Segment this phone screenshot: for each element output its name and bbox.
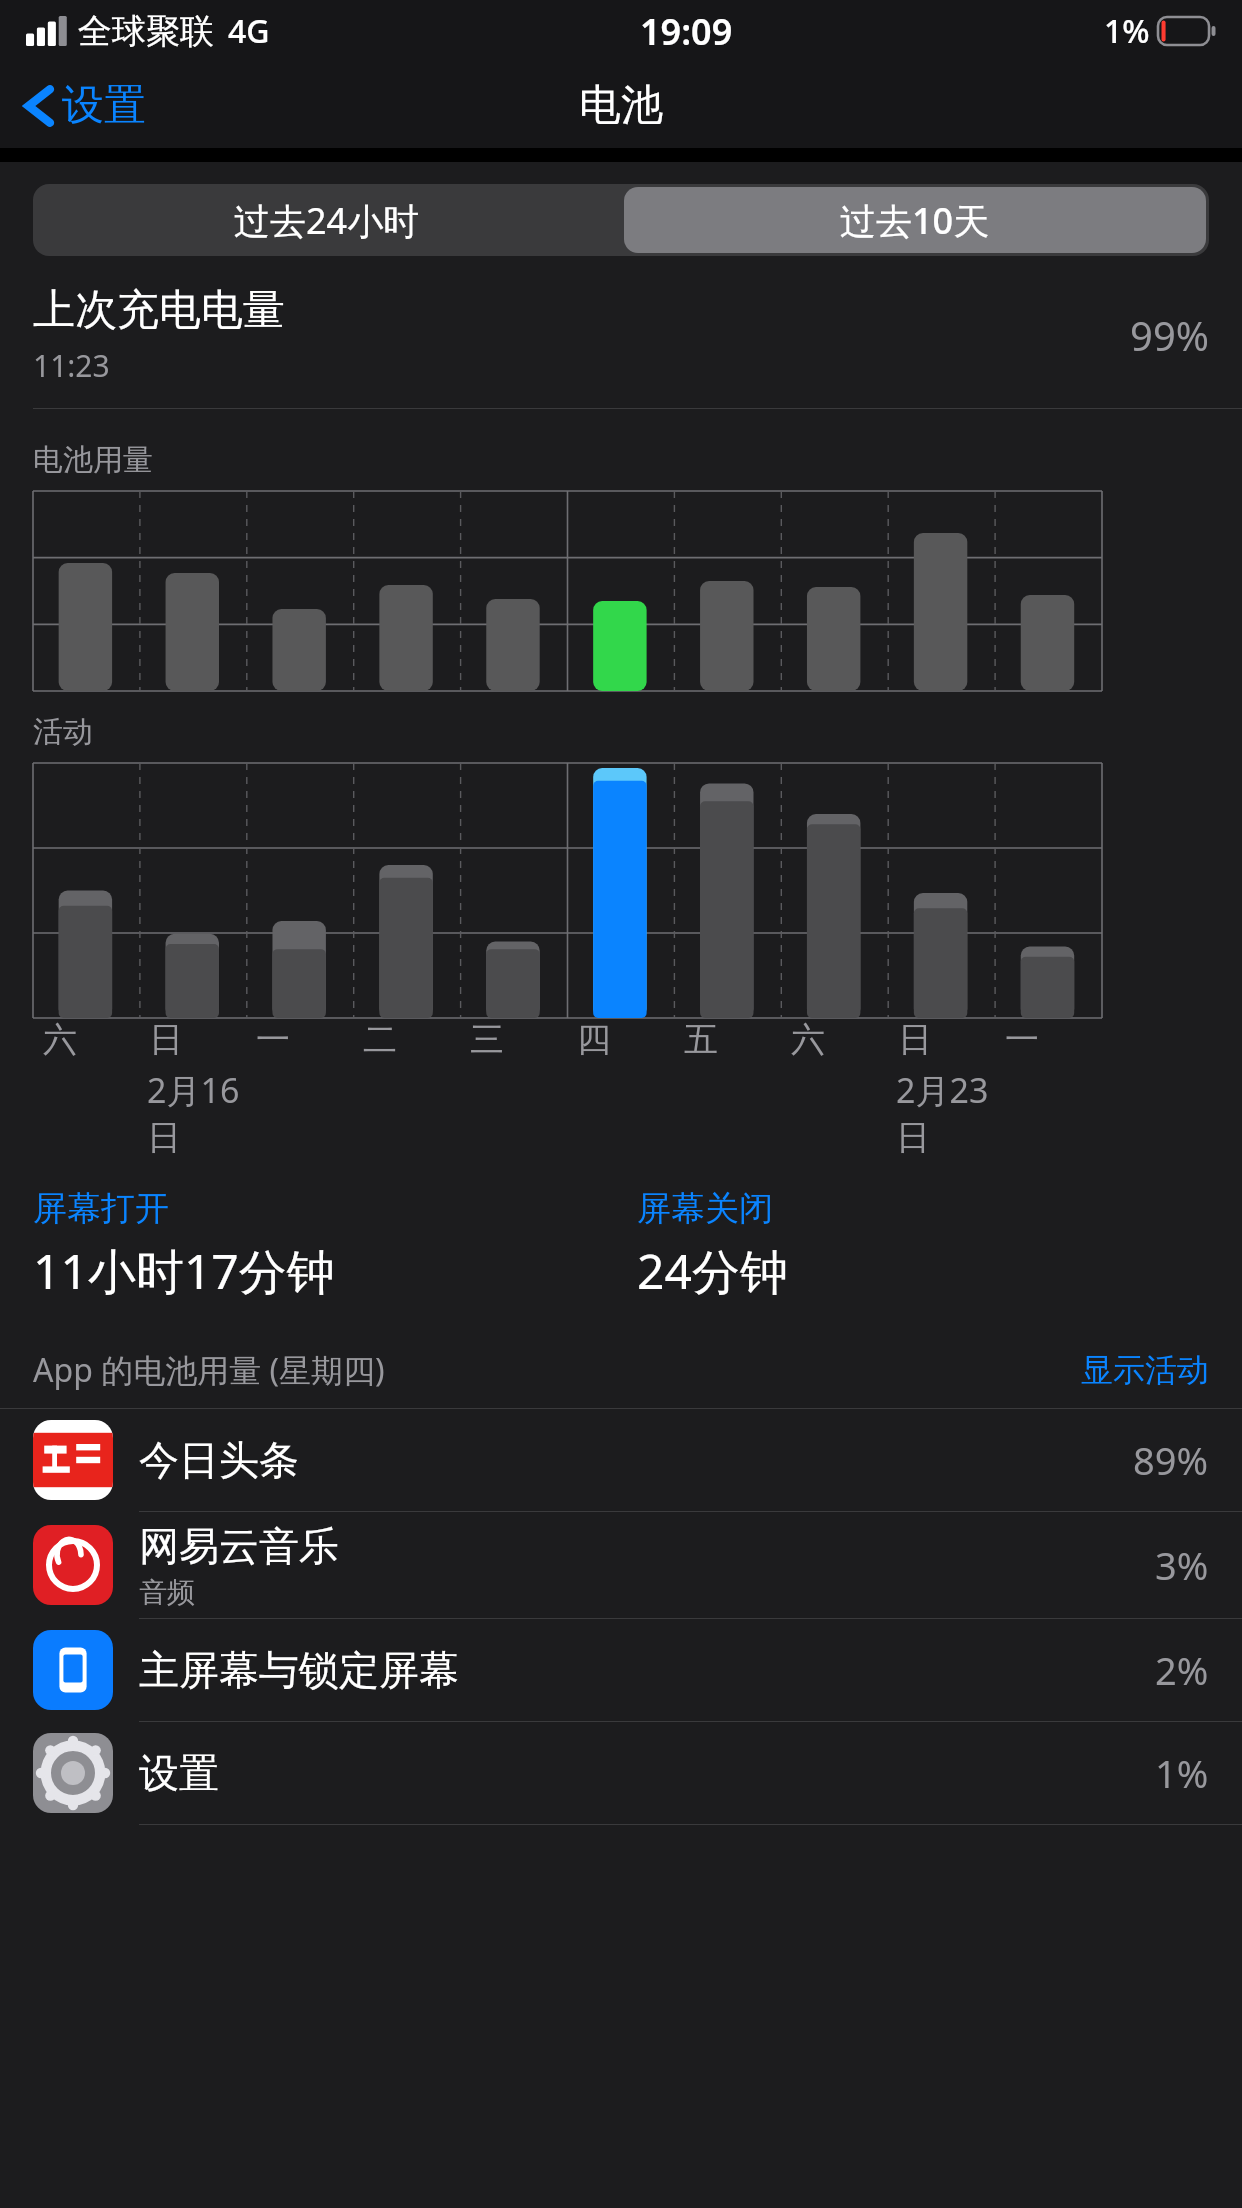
staticText: 屏幕关闭	[637, 1187, 773, 1230]
staticText: 3%	[1155, 1539, 1209, 1591]
staticText: 2%	[1155, 1644, 1209, 1696]
staticText: 1%	[1155, 1747, 1209, 1799]
staticText: 六	[791, 1018, 825, 1061]
staticText: 设置	[139, 1748, 219, 1798]
staticText: 11:23	[33, 345, 110, 386]
staticText: 11小时17分钟	[33, 1238, 335, 1304]
staticText: 日	[898, 1018, 932, 1061]
staticText: App 的电池用量 (星期四)	[33, 1348, 1081, 1392]
staticText: 电池用量	[33, 441, 153, 479]
staticText: 1%	[1104, 9, 1150, 53]
staticText: 六	[43, 1018, 77, 1061]
button[interactable]: 设置	[0, 1722, 1242, 1824]
staticText: 24分钟	[637, 1238, 788, 1304]
staticText: 音频	[139, 1575, 195, 1610]
staticText: 2月16日	[147, 1067, 246, 1159]
staticText: 上次充电电量	[33, 284, 285, 337]
staticText: 全球聚联	[78, 10, 214, 53]
staticText: 显示活动	[1081, 1350, 1209, 1390]
staticText: 主屏幕与锁定屏幕	[139, 1645, 459, 1695]
button[interactable]: 网易云音乐	[0, 1512, 1242, 1618]
staticText: 一	[1005, 1018, 1039, 1061]
button[interactable]: 过去24小时	[33, 184, 621, 256]
button[interactable]: 过去10天	[624, 187, 1206, 253]
staticText: 99%	[1130, 308, 1209, 362]
staticText: 屏幕打开	[33, 1187, 169, 1230]
staticText: 一	[256, 1018, 290, 1061]
button[interactable]: 显示活动	[1081, 1350, 1209, 1390]
staticText: 今日头条	[139, 1435, 299, 1485]
staticText: 二	[363, 1018, 397, 1061]
staticText: 过去10天	[840, 196, 990, 245]
staticText: 五	[684, 1018, 718, 1061]
staticText: 19:09	[640, 7, 733, 56]
staticText: 2月23日	[896, 1067, 995, 1159]
staticText: 过去24小时	[234, 196, 420, 245]
staticText: 四	[577, 1018, 611, 1061]
staticText: 4G	[228, 9, 270, 53]
staticText: 三	[470, 1018, 504, 1061]
button[interactable]: 设置	[26, 79, 158, 132]
staticText: 日	[149, 1018, 183, 1061]
staticText: 设置	[62, 79, 146, 132]
staticText: 电池	[579, 79, 663, 132]
staticText: 活动	[33, 713, 93, 751]
button[interactable]: 主屏幕与锁定屏幕	[0, 1619, 1242, 1721]
button[interactable]: 今日头条	[0, 1409, 1242, 1511]
staticText: 89%	[1133, 1434, 1209, 1486]
staticText: 网易云音乐	[139, 1521, 339, 1571]
